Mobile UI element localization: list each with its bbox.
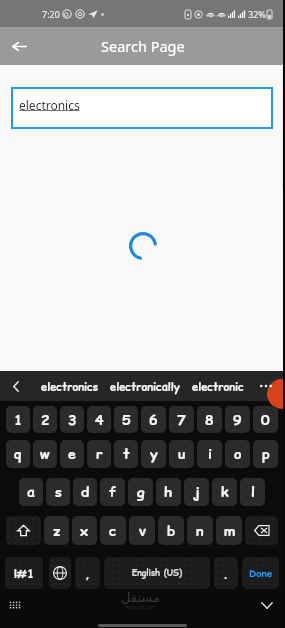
staticText: electronically (110, 379, 180, 394)
staticText: b (167, 521, 176, 541)
button[interactable]: 2 (33, 406, 57, 433)
button[interactable]: Space (104, 557, 210, 589)
staticText: 3 (68, 410, 77, 430)
button[interactable]: q (6, 440, 30, 468)
button[interactable]: f (100, 478, 125, 506)
button[interactable]: o (225, 440, 250, 468)
staticText: a (27, 482, 35, 502)
staticText: English (US) (132, 567, 183, 579)
button[interactable]: , (75, 557, 100, 589)
staticText: 2 (41, 410, 50, 430)
staticText: mostaql.com (125, 604, 156, 611)
button[interactable]: i (197, 440, 222, 468)
staticText: 0 (261, 410, 270, 430)
staticText: u (178, 444, 186, 464)
button[interactable]: 6 (141, 406, 166, 433)
button[interactable]: u (169, 440, 194, 468)
staticText: k (221, 482, 229, 502)
button[interactable]: Switch keyboard (5, 595, 25, 615)
button[interactable]: j (184, 478, 209, 506)
button[interactable]: t (114, 440, 138, 468)
staticText: 8 (205, 410, 214, 430)
staticText: i (208, 444, 212, 464)
staticText: f (109, 482, 117, 502)
staticText: Done (249, 566, 273, 580)
button[interactable]: 0 (253, 406, 278, 433)
button[interactable]: . (214, 557, 238, 589)
button[interactable]: m (216, 516, 242, 545)
button[interactable]: 1 (6, 406, 30, 433)
button[interactable]: 5 (114, 406, 138, 433)
button[interactable]: 3 (60, 406, 84, 433)
button[interactable]: Shift (6, 516, 41, 545)
button[interactable]: v (129, 516, 155, 545)
staticText: c (109, 521, 117, 541)
button[interactable]: s (46, 478, 70, 506)
staticText: 4 (95, 410, 104, 430)
staticText: e (68, 444, 76, 464)
button[interactable]: electronically (108, 371, 181, 401)
staticText: q (14, 444, 22, 464)
staticText: 1 (14, 410, 23, 430)
staticText: !#1 (14, 565, 35, 582)
button[interactable]: h (156, 478, 181, 506)
button[interactable]: p (253, 440, 278, 468)
button[interactable]: w (33, 440, 57, 468)
button[interactable]: Hide keyboard (257, 595, 277, 615)
button[interactable]: b (158, 516, 184, 545)
button[interactable]: g (128, 478, 153, 506)
staticText: z (53, 521, 61, 541)
staticText: g (137, 482, 145, 502)
button[interactable]: x (72, 516, 97, 545)
staticText: h (164, 482, 173, 502)
staticText: n (196, 521, 204, 541)
button[interactable]: More options (254, 371, 285, 401)
button[interactable]: electronics (11, 87, 273, 129)
staticText: 9 (233, 410, 242, 430)
staticText: electronic (192, 379, 244, 394)
staticText: s (55, 482, 62, 502)
button[interactable]: k (212, 478, 237, 506)
staticText: o (234, 444, 242, 464)
button[interactable]: electronics (31, 371, 108, 401)
button[interactable]: e (60, 440, 84, 468)
button[interactable]: d (73, 478, 97, 506)
staticText: , (85, 565, 91, 582)
button[interactable]: 4 (87, 406, 111, 433)
button[interactable]: 8 (197, 406, 222, 433)
button[interactable]: 7 (169, 406, 194, 433)
button[interactable]: c (100, 516, 126, 545)
staticText: 32% (248, 8, 266, 20)
staticText: . (223, 565, 229, 582)
button[interactable]: Previous suggestions (0, 371, 31, 401)
button[interactable]: Change language (49, 557, 71, 589)
button[interactable]: a (19, 478, 43, 506)
button[interactable]: l (240, 478, 265, 506)
staticText: d (81, 482, 90, 502)
button[interactable]: Symbols (5, 557, 43, 589)
staticText: m (224, 521, 235, 541)
staticText: v (139, 521, 146, 541)
button[interactable]: n (187, 516, 213, 545)
button[interactable]: y (141, 440, 166, 468)
staticText: y (150, 444, 158, 464)
staticText: x (80, 521, 89, 541)
button[interactable]: Done (242, 557, 279, 589)
staticText: electronics (19, 97, 80, 113)
staticText: 6 (149, 410, 158, 430)
button[interactable]: electronic (181, 371, 254, 401)
button[interactable]: r (87, 440, 111, 468)
staticText: t (123, 444, 130, 464)
staticText: مستقل (121, 590, 160, 605)
staticText: electronics (41, 379, 99, 394)
staticText: 5 (122, 410, 131, 430)
button[interactable]: 9 (225, 406, 250, 433)
button[interactable]: Back (6, 33, 33, 60)
staticText: l (251, 482, 255, 502)
button[interactable]: z (44, 516, 69, 545)
staticText: 7 (177, 410, 186, 430)
staticText: p (262, 444, 270, 464)
staticText: j (194, 482, 200, 502)
button[interactable]: Backspace (245, 516, 278, 545)
staticText: Search Page (101, 36, 185, 56)
